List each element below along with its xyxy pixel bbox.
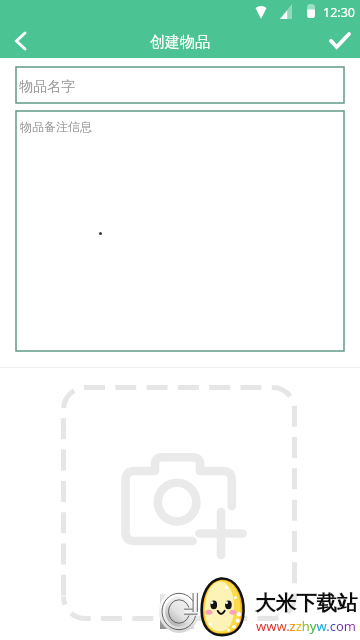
staticText: www.zzhyw.com: [256, 617, 356, 635]
staticText: 物品备注信息: [20, 119, 92, 134]
staticText: 创建物品: [150, 33, 210, 52]
button[interactable]: Confirm: [320, 23, 360, 58]
staticText: 物品名字: [19, 78, 75, 96]
button[interactable]: Back: [0, 23, 40, 58]
staticText: 12:30: [323, 4, 355, 21]
staticText: 大米下载站: [255, 590, 358, 616]
button[interactable]: Add photo: [61, 385, 297, 621]
